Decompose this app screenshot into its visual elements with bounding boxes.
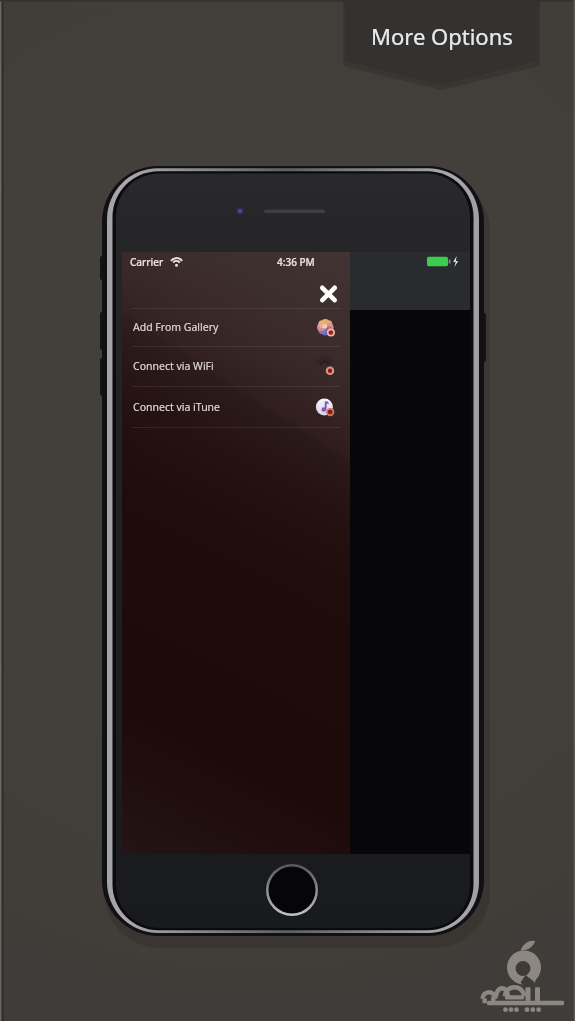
staticText: Connect via WiFi [133, 359, 214, 373]
button[interactable]: Add From Gallery [122, 308, 350, 346]
button[interactable]: Connect via iTune [122, 386, 350, 427]
staticText: Connect via iTune [133, 400, 221, 414]
button[interactable]: Close [312, 278, 344, 310]
staticText: More Options [371, 21, 513, 51]
button[interactable]: More Options [345, 0, 538, 61]
staticText: 4:36 PM [277, 255, 315, 269]
button[interactable]: Connect via WiFi [122, 346, 350, 386]
staticText: Carrier [130, 255, 164, 269]
staticText: Add From Gallery [133, 320, 219, 334]
